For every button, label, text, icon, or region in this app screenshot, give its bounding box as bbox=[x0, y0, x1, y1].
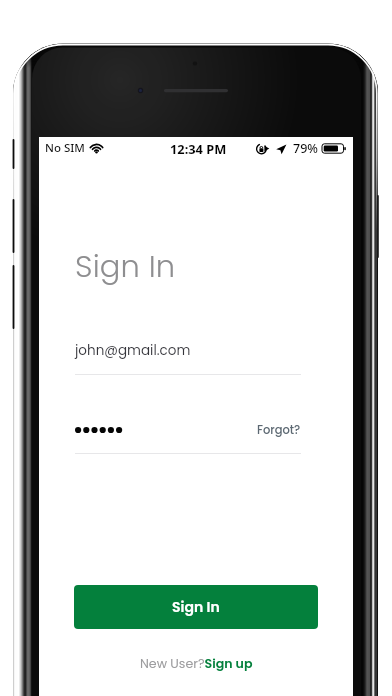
button[interactable]: Forgot? bbox=[257, 422, 301, 438]
other: Rotation lock bbox=[256, 143, 268, 155]
staticText: New User?Sign up bbox=[140, 655, 253, 673]
staticText: john@gmail.com bbox=[75, 341, 191, 360]
button[interactable]: Sign In bbox=[74, 585, 318, 629]
other: Location bbox=[275, 143, 287, 155]
other: Password bbox=[75, 423, 127, 437]
staticText: 12:34 PM bbox=[170, 140, 227, 157]
staticText: Sign In bbox=[75, 245, 176, 288]
button[interactable]: New User?Sign up bbox=[140, 655, 253, 673]
staticText: 79% bbox=[293, 140, 318, 157]
staticText: Sign In bbox=[172, 597, 220, 617]
staticText: Forgot? bbox=[257, 422, 301, 438]
staticText: No SIM bbox=[45, 140, 85, 156]
button[interactable]: john@gmail.com bbox=[75, 341, 301, 375]
